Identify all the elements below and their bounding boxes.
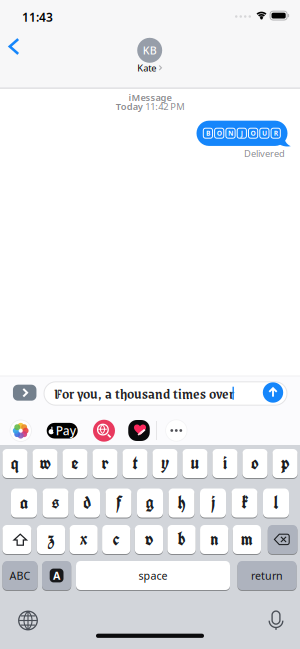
button[interactable]: ABC xyxy=(2,561,37,590)
button[interactable]: k xyxy=(231,488,257,517)
button[interactable]: t xyxy=(122,449,148,478)
staticText: return xyxy=(251,568,283,583)
button[interactable]: x xyxy=(69,525,98,554)
button[interactable]: s xyxy=(42,488,68,517)
button[interactable]: d xyxy=(74,488,100,517)
staticText: s xyxy=(51,491,59,514)
button[interactable]: b xyxy=(167,525,196,554)
staticText: t xyxy=(132,451,137,475)
staticText: U xyxy=(262,129,267,138)
button[interactable]: v xyxy=(135,525,163,554)
staticText: l xyxy=(273,491,278,514)
staticText: B xyxy=(206,129,210,138)
staticText: f xyxy=(116,491,121,514)
staticText: m xyxy=(241,527,253,551)
staticText: R xyxy=(274,129,278,138)
button[interactable]: q xyxy=(2,449,28,478)
staticText: e xyxy=(71,451,78,475)
staticText: O xyxy=(217,129,222,138)
staticText: x xyxy=(80,527,87,551)
button[interactable]: u xyxy=(182,449,208,478)
button[interactable]: y xyxy=(152,449,178,478)
staticText: v xyxy=(145,527,153,551)
button[interactable]: space xyxy=(76,561,230,590)
staticText: J xyxy=(241,129,243,138)
button[interactable]: c xyxy=(102,525,130,554)
button[interactable]: Font style xyxy=(42,561,71,590)
staticText: z xyxy=(47,527,54,551)
staticText: O xyxy=(251,129,256,138)
staticText: a xyxy=(20,491,28,514)
staticText: i xyxy=(223,451,227,475)
button[interactable]: Digital Touch xyxy=(128,420,150,441)
staticText: KB xyxy=(143,43,157,57)
button[interactable]: n xyxy=(200,525,228,554)
staticText: Pay xyxy=(56,423,76,439)
staticText: u xyxy=(190,451,199,475)
button[interactable]: i xyxy=(212,449,238,478)
button[interactable]: p xyxy=(272,449,298,478)
button[interactable]: Find images xyxy=(93,420,115,442)
staticText: j xyxy=(211,491,215,514)
button[interactable]: r xyxy=(92,449,118,478)
staticText: Kate xyxy=(137,62,156,74)
button[interactable]: f xyxy=(105,488,131,517)
button[interactable]: Shift xyxy=(2,525,31,554)
staticText: ABC xyxy=(9,568,30,583)
staticText: b xyxy=(177,527,185,551)
staticText: N xyxy=(228,129,233,138)
staticText: A xyxy=(53,568,60,583)
button[interactable]: a xyxy=(11,488,37,517)
button[interactable]: Show app drawer xyxy=(13,385,36,401)
button[interactable]: o xyxy=(242,449,268,478)
button[interactable]: Delete xyxy=(268,525,297,554)
staticText: o xyxy=(251,451,259,475)
button[interactable]: return xyxy=(237,561,296,590)
staticText: p xyxy=(281,451,289,475)
button[interactable]: Apple Pay xyxy=(47,423,78,438)
button[interactable]: More apps xyxy=(166,420,187,441)
button[interactable]: Kate, conversation details xyxy=(130,37,170,74)
button[interactable]: e xyxy=(62,449,88,478)
staticText: w xyxy=(39,451,50,475)
staticText: 11:42 PM xyxy=(145,100,184,113)
staticText: y xyxy=(160,451,169,475)
staticText: iMessage xyxy=(128,91,171,104)
staticText: r xyxy=(101,451,108,475)
button[interactable]: m xyxy=(233,525,261,554)
staticText: Today xyxy=(116,100,143,113)
button[interactable]: g xyxy=(137,488,163,517)
button[interactable]: h xyxy=(168,488,194,517)
staticText: g xyxy=(145,491,154,514)
staticText: q xyxy=(11,451,19,475)
staticText: h xyxy=(177,491,185,514)
button[interactable]: Next keyboard xyxy=(17,609,39,631)
staticText: 11:43 xyxy=(22,9,53,25)
staticText: k xyxy=(241,491,247,514)
button[interactable]: Send xyxy=(263,382,283,403)
staticText: n xyxy=(210,527,218,551)
button[interactable]: Dictate xyxy=(266,611,285,630)
staticText: For you, a thousand times over xyxy=(54,382,234,405)
staticText: d xyxy=(83,491,90,514)
button[interactable]: l xyxy=(263,488,289,517)
staticText: Delivered xyxy=(244,147,285,160)
staticText: c xyxy=(113,527,120,551)
button[interactable]: Photos xyxy=(10,420,31,441)
button[interactable]: w xyxy=(32,449,58,478)
button[interactable]: z xyxy=(37,525,65,554)
staticText: space xyxy=(138,568,167,583)
button[interactable]: Back xyxy=(0,30,27,63)
button[interactable]: j xyxy=(200,488,226,517)
